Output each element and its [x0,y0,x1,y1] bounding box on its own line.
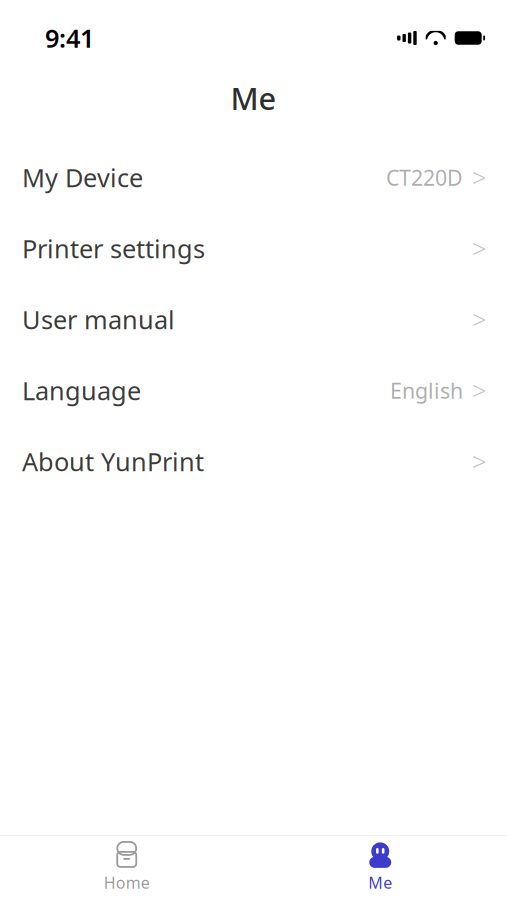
staticText: > [472,445,486,478]
staticText: Language [22,374,141,407]
staticText: > [472,161,486,194]
staticText: CT220D [386,163,463,192]
staticText: User manual [22,303,175,336]
staticText: About YunPrint [22,445,204,478]
staticText: English [390,376,463,405]
staticText: My Device [22,161,143,194]
staticText: > [472,303,486,336]
staticText: 9:41 [45,21,94,55]
staticText: > [472,374,486,407]
staticText: > [472,232,486,265]
button[interactable]: Me [253,836,507,900]
button[interactable]: My Device [0,142,507,213]
button[interactable]: Home [0,836,253,900]
staticText: Printer settings [22,232,205,265]
staticText: Home [104,872,150,893]
button[interactable]: Printer settings [0,213,507,284]
button[interactable]: User manual [0,284,507,355]
staticText: Me [368,872,392,893]
button[interactable]: About YunPrint [0,426,507,497]
button[interactable]: Language [0,355,507,426]
staticText: Me [230,78,276,118]
